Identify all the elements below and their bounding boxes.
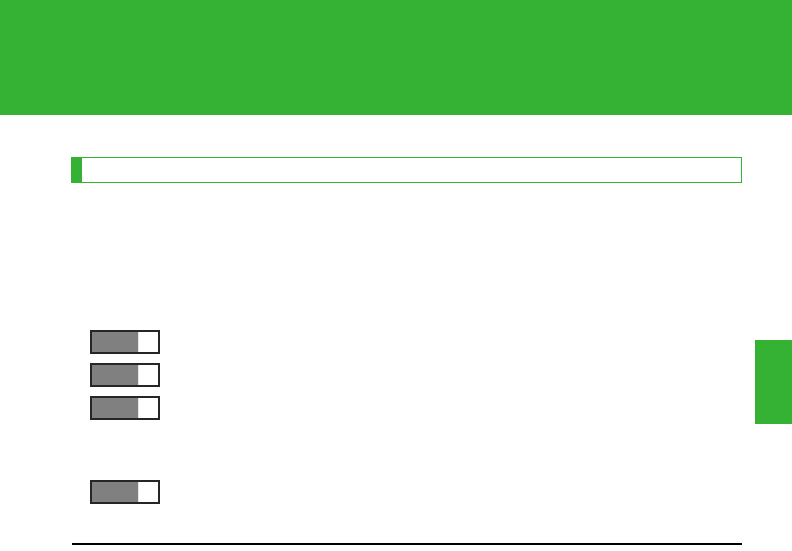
button[interactable]: Search field bbox=[71, 157, 742, 183]
button[interactable]: Gauge 3 bbox=[90, 396, 160, 420]
button[interactable]: Gauge 1 bbox=[90, 330, 160, 354]
button[interactable]: Gauge 2 bbox=[90, 363, 160, 387]
button[interactable]: Gauge 4 bbox=[90, 480, 160, 504]
